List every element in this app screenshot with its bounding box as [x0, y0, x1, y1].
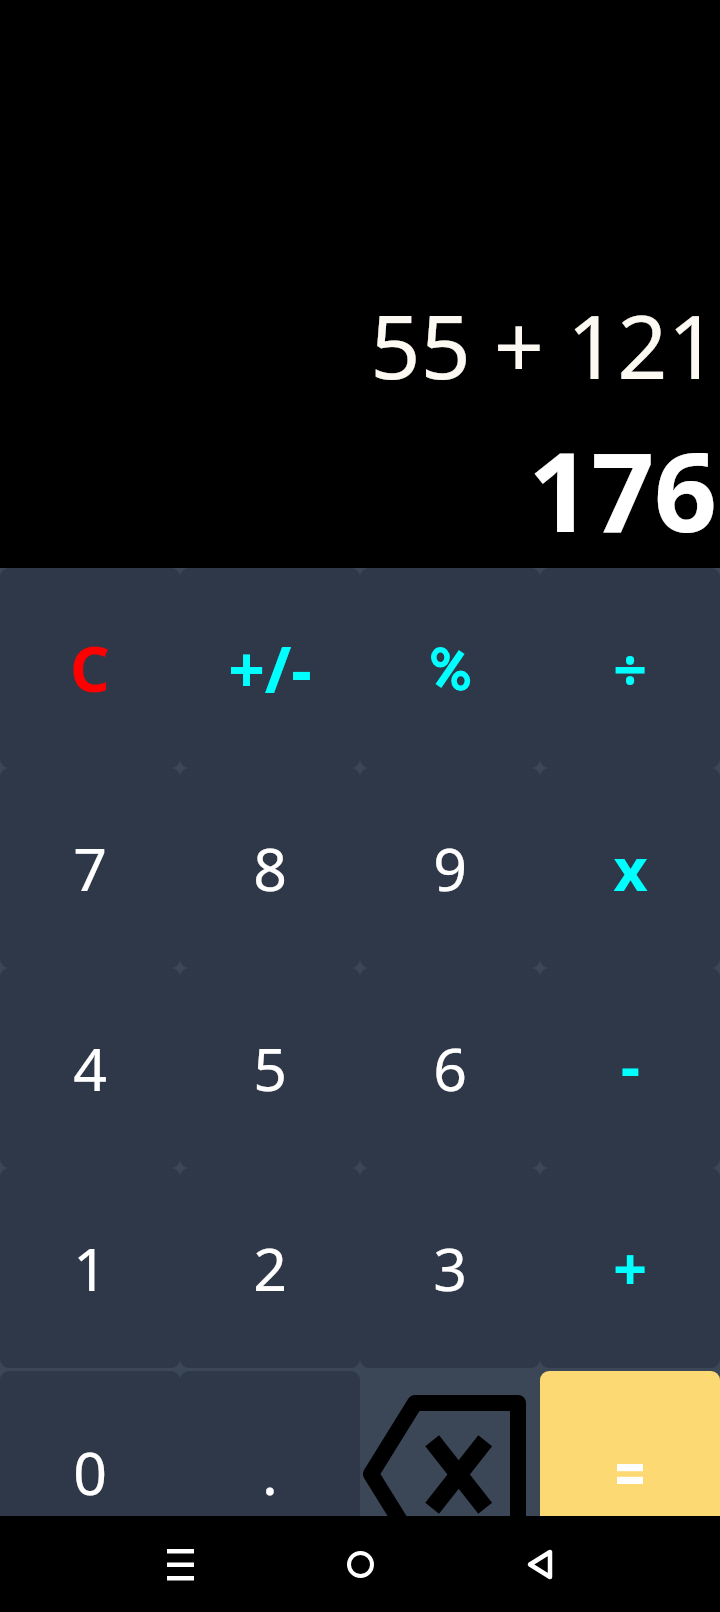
staticText: 4 [73, 1028, 107, 1108]
staticText: 8 [253, 828, 287, 908]
staticText: 1 [73, 1228, 107, 1308]
button[interactable]: C [0, 568, 180, 768]
button[interactable]: 2 [180, 1168, 360, 1368]
button[interactable]: 9 [360, 768, 540, 968]
button[interactable]: 4 [0, 968, 180, 1168]
staticText: + [613, 1228, 647, 1308]
button[interactable]: 0 [0, 1371, 180, 1571]
staticText: 2 [253, 1228, 287, 1308]
button[interactable]: - [540, 968, 720, 1168]
staticText: ÷ [613, 628, 647, 708]
button[interactable]: Back [490, 1516, 590, 1612]
button[interactable]: 8 [180, 768, 360, 968]
button[interactable]: x [540, 768, 720, 968]
button[interactable]: +/- [180, 568, 360, 768]
button[interactable]: Home [310, 1516, 410, 1612]
staticText: 176 [528, 414, 717, 564]
button[interactable]: Equals [540, 1371, 720, 1571]
button[interactable]: 3 [360, 1168, 540, 1368]
button[interactable]: 7 [0, 768, 180, 968]
button[interactable]: + [540, 1168, 720, 1368]
staticText: x [613, 828, 648, 908]
button[interactable]: Recent apps [130, 1516, 230, 1612]
staticText: . [262, 1432, 278, 1512]
staticText: 5 [253, 1028, 287, 1108]
staticText: - [621, 1025, 640, 1105]
button[interactable]: 1 [0, 1168, 180, 1368]
staticText: +/- [228, 625, 312, 712]
staticText: 3 [433, 1228, 467, 1308]
staticText: 9 [433, 828, 467, 908]
staticText: 0 [73, 1432, 107, 1512]
button[interactable]: ÷ [540, 568, 720, 768]
button[interactable]: Percent [360, 568, 540, 768]
staticText: 6 [433, 1028, 467, 1108]
button[interactable]: 5 [180, 968, 360, 1168]
staticText: 55 + 121 [370, 285, 718, 405]
button[interactable]: 6 [360, 968, 540, 1168]
staticText: C [70, 626, 110, 710]
button[interactable]: Backspace [360, 1371, 540, 1571]
button[interactable]: . [180, 1371, 360, 1571]
staticText: 7 [73, 828, 107, 908]
